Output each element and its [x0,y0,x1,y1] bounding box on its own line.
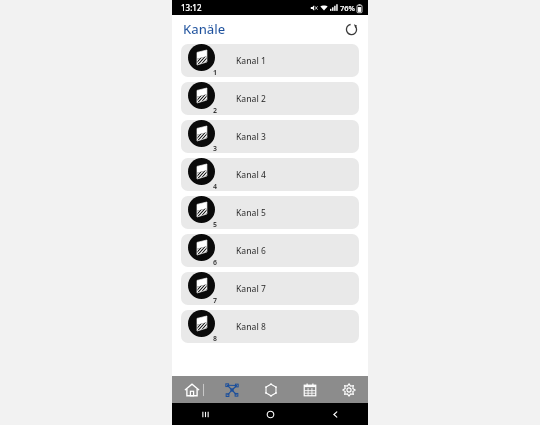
button[interactable]: 4 [181,158,359,191]
staticText: Kanal 3 [236,131,266,143]
staticText: 3 [213,144,218,153]
staticText: Kanal 1 [236,55,266,67]
staticText: 2 [213,106,218,115]
button[interactable]: 3 [181,120,359,153]
staticText: 13:12 [181,2,202,13]
button[interactable]: Zurück [303,403,368,425]
button[interactable]: 8 [181,310,359,343]
button[interactable]: Szenen [251,376,290,403]
button[interactable]: 7 [181,272,359,305]
button[interactable]: Kalender [290,376,329,403]
button[interactable]: Startbildschirm [238,403,303,425]
button[interactable]: Aktualisieren [341,19,361,39]
staticText: Kanal 7 [236,283,266,295]
staticText: 8 [213,334,218,343]
staticText: 4 [213,182,218,191]
button[interactable]: 2 [181,82,359,115]
staticText: Kanäle [183,20,226,38]
staticText: Kanal 4 [236,169,266,181]
staticText: 76% [340,3,355,13]
staticText: Kanal 8 [236,321,266,333]
button[interactable]: Einstellungen [329,376,368,403]
staticText: 7 [213,296,218,305]
staticText: 5 [213,220,218,229]
button[interactable]: Übersicht [172,403,238,425]
button[interactable]: 1 [181,44,359,77]
button[interactable]: 5 [181,196,359,229]
staticText: Kanal 2 [236,93,266,105]
button[interactable]: 6 [181,234,359,267]
staticText: Kanal 6 [236,245,266,257]
staticText: 6 [213,258,218,267]
button[interactable]: Start [172,376,212,403]
staticText: 1 [213,68,218,77]
staticText: Kanal 5 [236,207,266,219]
button[interactable]: Kanäle [212,376,251,403]
